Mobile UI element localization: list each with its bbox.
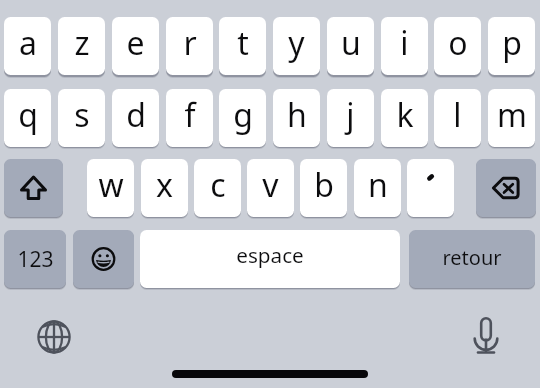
button[interactable]: p xyxy=(488,17,535,75)
staticText: b xyxy=(314,163,334,207)
staticText: f xyxy=(184,93,196,137)
staticText: k xyxy=(396,93,414,137)
button[interactable]: s xyxy=(58,89,105,147)
button[interactable]: y xyxy=(273,17,320,75)
button[interactable]: v xyxy=(247,159,294,217)
staticText: espace xyxy=(236,241,304,269)
button[interactable]: a xyxy=(4,17,51,75)
staticText: y xyxy=(288,21,305,65)
button[interactable]: b xyxy=(300,159,347,217)
button[interactable]: x xyxy=(141,159,188,217)
staticText: s xyxy=(74,93,90,137)
button[interactable]: j xyxy=(327,89,374,147)
button[interactable]: Backspace xyxy=(476,159,536,217)
staticText: 123 xyxy=(17,245,54,274)
button[interactable]: z xyxy=(58,17,105,75)
button[interactable]: q xyxy=(4,89,51,147)
button[interactable]: f xyxy=(166,89,213,147)
button[interactable]: u xyxy=(327,17,374,75)
staticText: d xyxy=(126,93,146,137)
button[interactable]: r xyxy=(166,17,213,75)
staticText: i xyxy=(400,21,409,65)
button[interactable]: i xyxy=(381,17,428,75)
button[interactable]: Apostrophe xyxy=(407,159,454,217)
button[interactable]: g xyxy=(219,89,266,147)
staticText: j xyxy=(346,93,355,137)
button[interactable]: n xyxy=(354,159,401,217)
button[interactable]: Shift xyxy=(4,159,63,217)
button[interactable]: w xyxy=(87,159,134,217)
staticText: z xyxy=(74,21,90,65)
staticText: w xyxy=(98,163,124,207)
button[interactable]: t xyxy=(219,17,266,75)
button[interactable]: k xyxy=(381,89,428,147)
staticText: x xyxy=(156,163,173,207)
button[interactable]: l xyxy=(434,89,481,147)
button[interactable]: 123 xyxy=(4,230,66,288)
staticText: n xyxy=(368,163,388,207)
button[interactable]: Dictate xyxy=(465,314,507,356)
button[interactable]: Emoji xyxy=(73,230,134,288)
staticText: q xyxy=(18,93,38,137)
button[interactable]: Change keyboard xyxy=(33,316,75,358)
staticText: r xyxy=(183,21,197,65)
staticText: p xyxy=(502,21,522,65)
staticText: m xyxy=(497,93,527,137)
staticText: e xyxy=(126,21,145,65)
button[interactable]: e xyxy=(112,17,159,75)
button[interactable]: retour xyxy=(409,230,535,288)
staticText: c xyxy=(210,163,226,207)
button[interactable]: espace xyxy=(140,230,400,288)
staticText: v xyxy=(262,163,279,207)
staticText: g xyxy=(233,93,253,137)
staticText: retour xyxy=(442,244,502,271)
staticText: t xyxy=(237,21,249,65)
button[interactable]: m xyxy=(488,89,535,147)
staticText: l xyxy=(453,93,462,137)
button[interactable]: o xyxy=(434,17,481,75)
staticText: u xyxy=(341,21,361,65)
button[interactable]: d xyxy=(112,89,159,147)
staticText: a xyxy=(19,21,37,65)
button[interactable]: c xyxy=(194,159,241,217)
staticText: h xyxy=(287,93,307,137)
staticText: o xyxy=(448,21,468,65)
button[interactable]: h xyxy=(273,89,320,147)
